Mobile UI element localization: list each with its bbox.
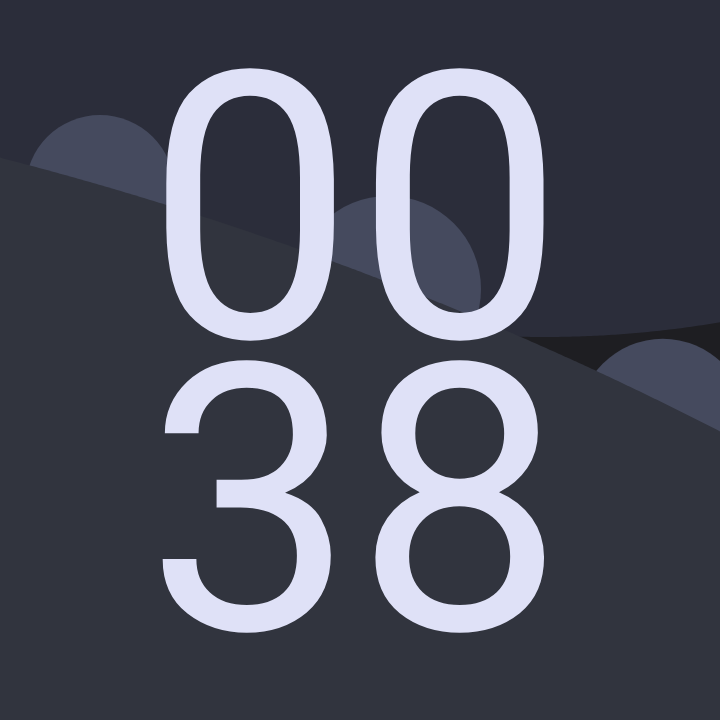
staticText: 38 — [0, 283, 715, 720]
button[interactable]: Watch face, time 00:38 — [0, 0, 720, 720]
staticText: 00 — [0, 0, 715, 428]
